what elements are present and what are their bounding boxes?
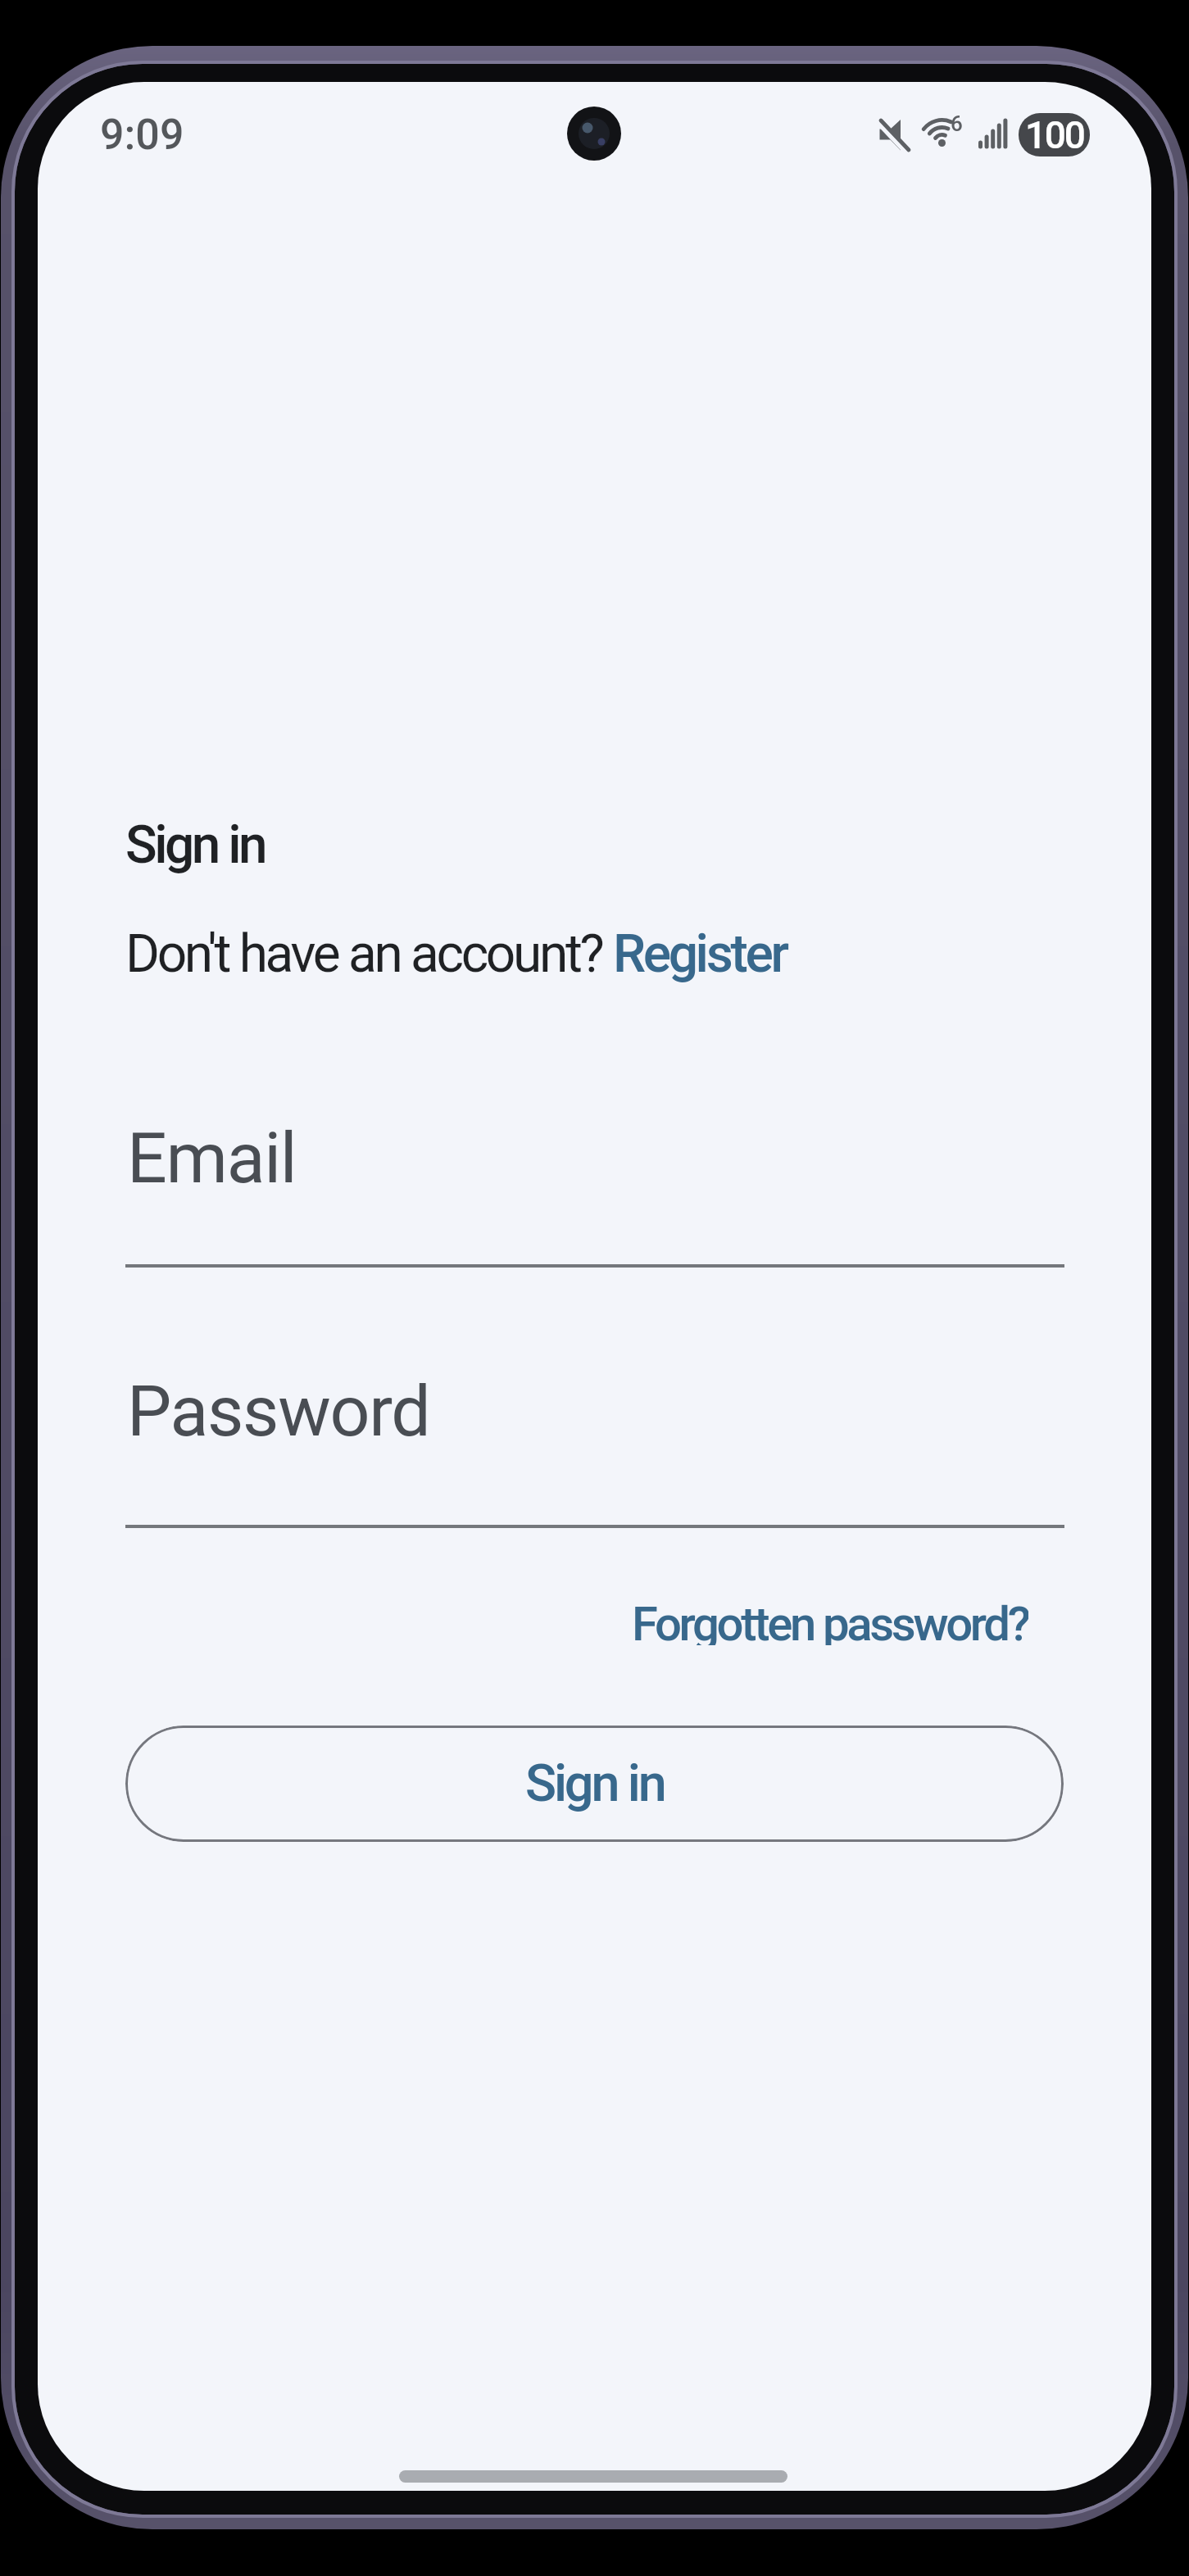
staticText: Sign in — [125, 814, 265, 876]
button[interactable]: Forgotten password? — [632, 1596, 1028, 1645]
button[interactable]: Register — [613, 923, 787, 985]
staticText: Sign in — [525, 1753, 665, 1814]
staticText: Email — [127, 1117, 297, 1200]
staticText: Don't have an account? — [125, 923, 613, 985]
button[interactable]: Sign in — [125, 1726, 1064, 1842]
staticText: 100 — [1025, 113, 1084, 156]
staticText: 9:09 — [100, 110, 184, 160]
staticText: 6 — [951, 111, 963, 136]
staticText: Password — [127, 1370, 430, 1453]
